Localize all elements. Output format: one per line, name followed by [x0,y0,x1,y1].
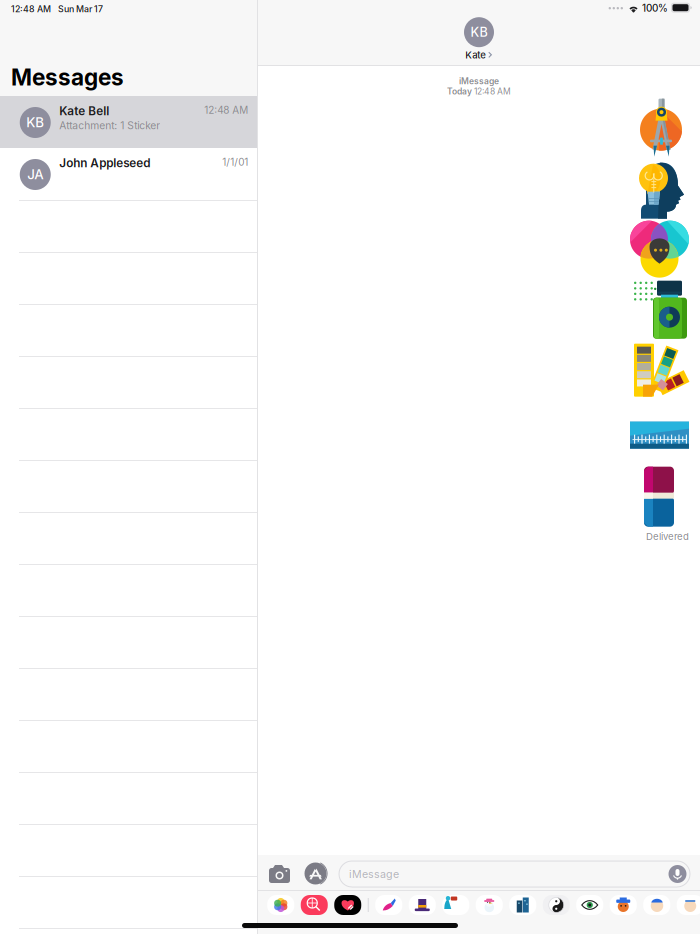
button[interactable]: Photos [267,895,294,915]
button[interactable]: Cowboy [610,895,637,915]
staticText: Delivered [646,531,689,542]
button[interactable]: Snowman [476,895,503,915]
staticText: 12:48 AM [474,86,511,97]
button[interactable]: App Store [304,861,329,886]
button[interactable]: Digital Touch [334,895,361,915]
staticText: Today [447,86,472,97]
button[interactable]: KB [464,17,494,61]
staticText: Kate Bell [59,104,109,118]
button[interactable]: Baby [643,895,670,915]
staticText: iMessage [349,867,399,880]
staticText: KB [26,114,44,130]
staticText: Sun Mar 17 [58,4,103,14]
button[interactable]: More [677,895,700,915]
staticText: 1/1/01 [222,156,248,168]
button[interactable]: JA [0,148,257,200]
staticText: iMessage [459,76,499,86]
staticText: JA [27,166,43,182]
button[interactable]: Brush [375,895,402,915]
staticText: Messages [11,64,124,91]
button[interactable]: Camera [266,862,293,886]
button[interactable]: City [509,895,536,915]
staticText: Kate [465,49,486,61]
staticText: KB [470,24,487,40]
button[interactable]: KB [0,96,257,148]
button[interactable]: Mermaid [442,895,469,915]
staticText: John Appleseed [59,156,150,170]
staticText: 12:48 AM [204,104,248,116]
button[interactable]: Top hat [409,895,436,915]
button[interactable]: iMessage [339,861,690,887]
button[interactable]: Images [301,895,328,915]
button[interactable]: Eye [576,895,603,915]
staticText: 100% [642,2,668,14]
button[interactable]: Yin yang [543,895,570,915]
staticText: Attachment: 1 Sticker [59,119,160,132]
staticText: 12:48 AM [11,4,51,14]
